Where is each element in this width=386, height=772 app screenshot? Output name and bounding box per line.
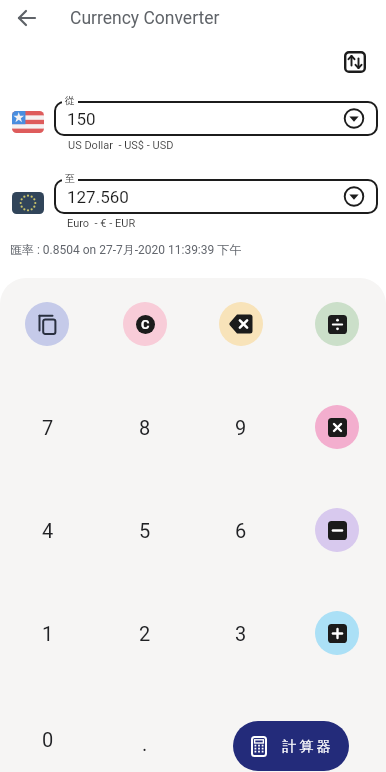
staticText: 9 (235, 416, 247, 439)
button[interactable]: 8 (105, 407, 185, 447)
staticText: US Dollar - US$ - USD (68, 139, 174, 152)
staticText: Currency Converter (70, 8, 220, 29)
staticText: C (141, 317, 150, 332)
staticText: 150 (67, 109, 96, 129)
button[interactable] (25, 302, 69, 346)
button[interactable]: . (105, 723, 185, 763)
staticText: 0 (42, 728, 54, 751)
button[interactable] (315, 302, 359, 346)
button[interactable]: 計算器 (233, 721, 349, 771)
staticText: Euro - € - EUR (67, 217, 136, 230)
button[interactable] (9, 0, 45, 36)
button[interactable]: 5 (105, 510, 185, 550)
button[interactable]: C (123, 302, 167, 346)
button[interactable]: 4 (8, 510, 88, 550)
staticText: 計算器 (281, 738, 332, 756)
button[interactable] (219, 302, 263, 346)
staticText: 6 (235, 519, 247, 542)
button[interactable]: 150 (54, 101, 378, 136)
staticText: 4 (42, 519, 54, 542)
staticText: 從 (65, 94, 75, 107)
staticText: 2 (139, 622, 151, 645)
staticText: . (142, 732, 148, 755)
button[interactable] (338, 45, 372, 79)
button[interactable] (315, 405, 359, 449)
button[interactable]: 6 (201, 510, 281, 550)
button[interactable]: 0 (8, 719, 88, 759)
button[interactable]: 9 (201, 407, 281, 447)
staticText: 8 (139, 416, 151, 439)
staticText: 7 (42, 416, 54, 439)
button[interactable]: 3 (201, 613, 281, 653)
button[interactable]: 7 (8, 407, 88, 447)
button[interactable] (315, 508, 359, 552)
staticText: 至 (65, 172, 75, 185)
staticText: 3 (235, 622, 247, 645)
staticText: 匯率 : 0.8504 on 27-7月-2020 11:39:39 下午 (10, 242, 242, 257)
button[interactable] (315, 611, 359, 655)
button[interactable]: 127.560 (54, 179, 378, 214)
staticText: 1 (42, 622, 54, 645)
staticText: 127.560 (67, 187, 129, 207)
staticText: 5 (139, 519, 151, 542)
button[interactable]: 1 (8, 613, 88, 653)
button[interactable]: 2 (105, 613, 185, 653)
